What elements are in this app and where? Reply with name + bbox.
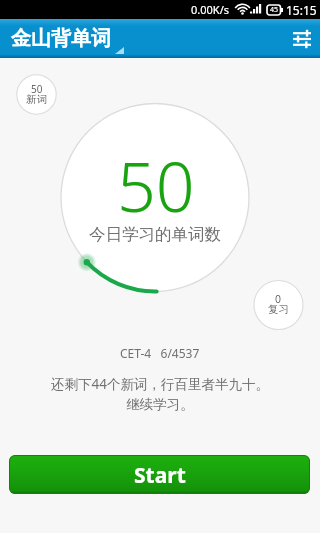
button[interactable]: Settings — [283, 22, 317, 56]
staticText: Start — [134, 461, 186, 490]
staticText: 50 — [31, 82, 43, 96]
staticText: 金山背单词 — [11, 26, 111, 51]
staticText: CET-4 6/4537 — [120, 345, 200, 361]
button[interactable]: 0 — [254, 281, 303, 330]
button[interactable]: 金山背单词 — [0, 19, 120, 58]
staticText: 新词 — [26, 93, 47, 106]
button[interactable]: Start — [9, 455, 310, 494]
staticText: 0.00K/s — [191, 2, 229, 17]
staticText: 45 — [270, 5, 279, 15]
staticText: 还剩下44个新词，行百里者半九十。 继续学习。 — [51, 375, 269, 413]
staticText: 今日学习的单词数 — [89, 224, 221, 245]
staticText: 15:15 — [286, 2, 317, 18]
staticText: 0 — [275, 292, 282, 306]
staticText: 复习 — [268, 303, 289, 316]
button[interactable]: 50 — [17, 75, 56, 114]
staticText: 50 — [117, 139, 195, 232]
